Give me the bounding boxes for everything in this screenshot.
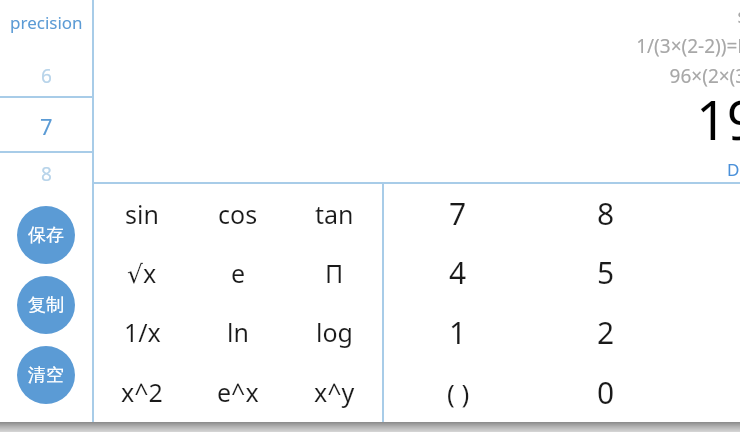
staticText: ( ) bbox=[447, 375, 470, 410]
button[interactable]: x^2 bbox=[94, 362, 190, 422]
staticText: 1/(3×(2-2))=Math Error bbox=[636, 33, 740, 59]
button[interactable]: 5 bbox=[532, 243, 680, 302]
button[interactable]: 4 bbox=[384, 243, 532, 302]
button[interactable]: cos bbox=[190, 184, 286, 243]
staticText: √x bbox=[127, 256, 157, 290]
staticText: 7 bbox=[449, 193, 467, 234]
staticText: 96×(2×(3-2))=192.0 bbox=[669, 63, 740, 89]
staticText: ln bbox=[227, 315, 249, 349]
button[interactable]: 1/x bbox=[94, 302, 190, 362]
button[interactable]: Π bbox=[286, 243, 382, 302]
staticText: 7 bbox=[40, 111, 53, 141]
staticText: cos bbox=[218, 197, 258, 231]
staticText: x^y bbox=[314, 375, 355, 409]
staticText: precision bbox=[10, 11, 83, 34]
staticText: 1/x bbox=[124, 315, 161, 349]
staticText: sin(90)=1.0 bbox=[737, 3, 740, 29]
staticText: 2 bbox=[597, 312, 615, 353]
staticText: 192.0 bbox=[695, 82, 740, 156]
button[interactable]: 清空 bbox=[17, 346, 75, 404]
button[interactable]: Deg bbox=[722, 156, 740, 183]
staticText: sin bbox=[125, 197, 159, 231]
button[interactable]: e^x bbox=[190, 362, 286, 422]
button[interactable]: 保存 bbox=[17, 206, 75, 264]
button[interactable]: 8 bbox=[532, 184, 680, 243]
staticText: 8 bbox=[41, 161, 52, 187]
button[interactable]: tan bbox=[286, 184, 382, 243]
button[interactable]: x^y bbox=[286, 362, 382, 422]
staticText: tan bbox=[315, 197, 354, 231]
staticText: 8 bbox=[597, 193, 615, 234]
button[interactable]: 2 bbox=[532, 302, 680, 362]
staticText: 0 bbox=[597, 372, 615, 413]
staticText: 保存 bbox=[28, 224, 64, 247]
button[interactable]: sin bbox=[94, 184, 190, 243]
staticText: Π bbox=[325, 256, 344, 290]
button[interactable]: e bbox=[190, 243, 286, 302]
staticText: log bbox=[316, 315, 353, 349]
staticText: e bbox=[231, 256, 246, 290]
button[interactable]: 7 bbox=[0, 100, 92, 151]
button[interactable]: 1 bbox=[384, 302, 532, 362]
staticText: Deg bbox=[727, 158, 740, 181]
button[interactable]: log bbox=[286, 302, 382, 362]
staticText: 4 bbox=[449, 252, 467, 293]
staticText: 复制 bbox=[28, 294, 64, 317]
staticText: x^2 bbox=[121, 375, 163, 409]
button[interactable]: precision bbox=[0, 0, 92, 44]
button[interactable]: √x bbox=[94, 243, 190, 302]
staticText: 6 bbox=[41, 63, 52, 89]
button[interactable]: 8 bbox=[0, 155, 92, 193]
button[interactable]: 7 bbox=[384, 184, 532, 243]
staticText: 清空 bbox=[28, 364, 64, 387]
button[interactable]: 复制 bbox=[17, 276, 75, 334]
button[interactable]: ( ) bbox=[384, 362, 532, 422]
button[interactable]: 6 bbox=[0, 56, 92, 96]
button[interactable]: ln bbox=[190, 302, 286, 362]
button[interactable]: 0 bbox=[532, 362, 680, 422]
staticText: 1 bbox=[449, 312, 467, 353]
staticText: 5 bbox=[597, 252, 615, 293]
staticText: e^x bbox=[217, 375, 259, 409]
